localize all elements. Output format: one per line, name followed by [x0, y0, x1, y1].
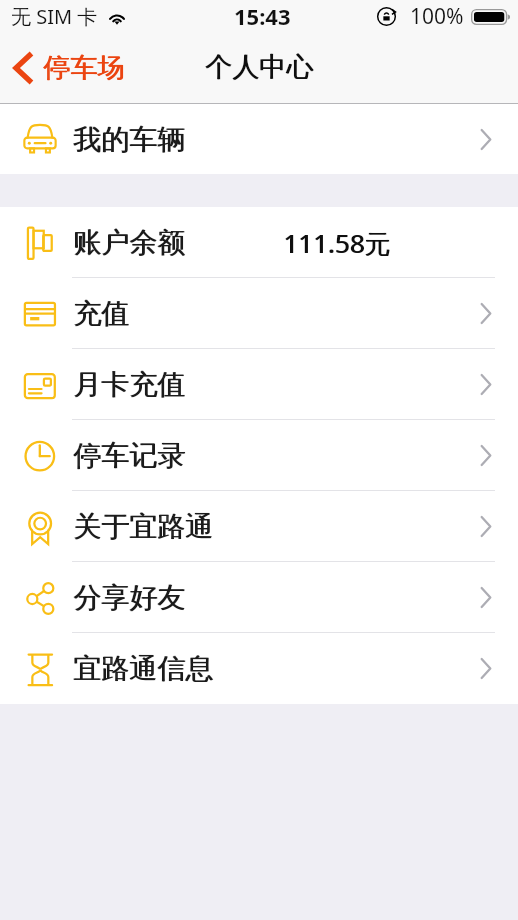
- button[interactable]: 停车场: [0, 43, 138, 93]
- staticText: 账户余额: [73, 225, 185, 260]
- staticText: 15:43: [234, 1, 291, 31]
- staticText: 我的车辆: [74, 122, 186, 157]
- staticText: 分享好友: [74, 580, 186, 615]
- staticText: 无 SIM 卡: [11, 3, 98, 30]
- staticText: 100%: [410, 2, 464, 31]
- staticText: 月卡充值: [73, 367, 185, 402]
- staticText: 111.58元: [284, 225, 392, 261]
- button[interactable]: 宜路通信息: [0, 633, 518, 704]
- staticText: 111.58元: [283, 225, 391, 261]
- staticText: 充值: [74, 296, 130, 331]
- button[interactable]: 月卡充值: [0, 349, 518, 420]
- staticText: 宜路通信息: [74, 651, 214, 686]
- staticText: 停车记录: [73, 438, 185, 473]
- staticText: 我的车辆: [73, 122, 185, 157]
- staticText: 关于宜路通: [73, 509, 213, 544]
- staticText: 停车场: [43, 51, 124, 85]
- button[interactable]: 账户余额: [0, 207, 518, 278]
- button[interactable]: 我的车辆: [0, 104, 518, 174]
- staticText: 个人中心: [206, 50, 314, 84]
- button[interactable]: 充值: [0, 278, 518, 349]
- staticText: 停车记录: [74, 438, 186, 473]
- staticText: 充值: [73, 296, 129, 331]
- staticText: 月卡充值: [74, 367, 186, 402]
- staticText: 宜路通信息: [73, 651, 213, 686]
- staticText: 停车场: [44, 51, 125, 85]
- button[interactable]: 关于宜路通: [0, 491, 518, 562]
- button[interactable]: 停车记录: [0, 420, 518, 491]
- staticText: 分享好友: [73, 580, 185, 615]
- staticText: 个人中心: [205, 50, 313, 84]
- staticText: 账户余额: [74, 225, 186, 260]
- staticText: 关于宜路通: [74, 509, 214, 544]
- button[interactable]: 分享好友: [0, 562, 518, 633]
